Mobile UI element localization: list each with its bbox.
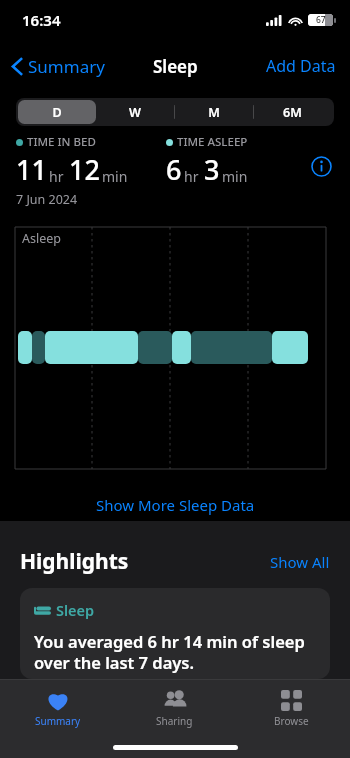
staticText: You averaged 6 hr 14 min of sleep over t… xyxy=(34,630,316,674)
button[interactable]: Summary xyxy=(0,687,116,730)
staticText: 67 xyxy=(316,14,326,26)
button[interactable]: About sleep data xyxy=(306,151,336,181)
staticText: 6M xyxy=(283,104,302,121)
staticText: Sharing xyxy=(156,714,193,728)
staticText: Sleep xyxy=(153,55,198,78)
staticText: Summary xyxy=(28,55,105,78)
button[interactable]: Sleep xyxy=(20,588,330,679)
staticText: Show More Sleep Data xyxy=(96,495,255,515)
button[interactable]: Browse xyxy=(233,687,350,730)
staticText: 12 xyxy=(69,151,100,188)
button[interactable]: 6M xyxy=(253,100,332,124)
staticText: hr xyxy=(49,167,64,186)
staticText: 16:34 xyxy=(22,10,61,30)
staticText: TIME ASLEEP xyxy=(177,134,248,150)
button[interactable]: Add Data xyxy=(252,47,350,85)
button[interactable]: Show All xyxy=(270,552,330,572)
staticText: D xyxy=(52,104,62,121)
staticText: TIME IN BED xyxy=(27,134,96,150)
staticText: Highlights xyxy=(20,547,129,576)
staticText: Summary xyxy=(35,714,81,728)
button[interactable]: Show More Sleep Data xyxy=(0,488,350,521)
staticText: 3 xyxy=(204,151,220,188)
button[interactable]: Summary xyxy=(8,49,109,84)
staticText: Browse xyxy=(274,714,309,728)
button[interactable]: W xyxy=(96,100,174,124)
staticText: Add Data xyxy=(266,55,336,77)
button[interactable]: M xyxy=(174,100,253,124)
staticText: 6 xyxy=(166,151,182,188)
staticText: Show All xyxy=(270,552,330,572)
button[interactable]: Sharing xyxy=(116,687,233,730)
staticText: Asleep xyxy=(22,230,61,247)
staticText: Sleep xyxy=(56,600,95,620)
staticText: M xyxy=(208,104,220,121)
button[interactable]: D xyxy=(18,100,96,124)
staticText: min xyxy=(222,167,248,186)
staticText: hr xyxy=(184,167,199,186)
staticText: 11 xyxy=(16,151,47,188)
staticText: min xyxy=(102,167,128,186)
staticText: 7 Jun 2024 xyxy=(16,191,78,208)
staticText: W xyxy=(129,104,141,121)
